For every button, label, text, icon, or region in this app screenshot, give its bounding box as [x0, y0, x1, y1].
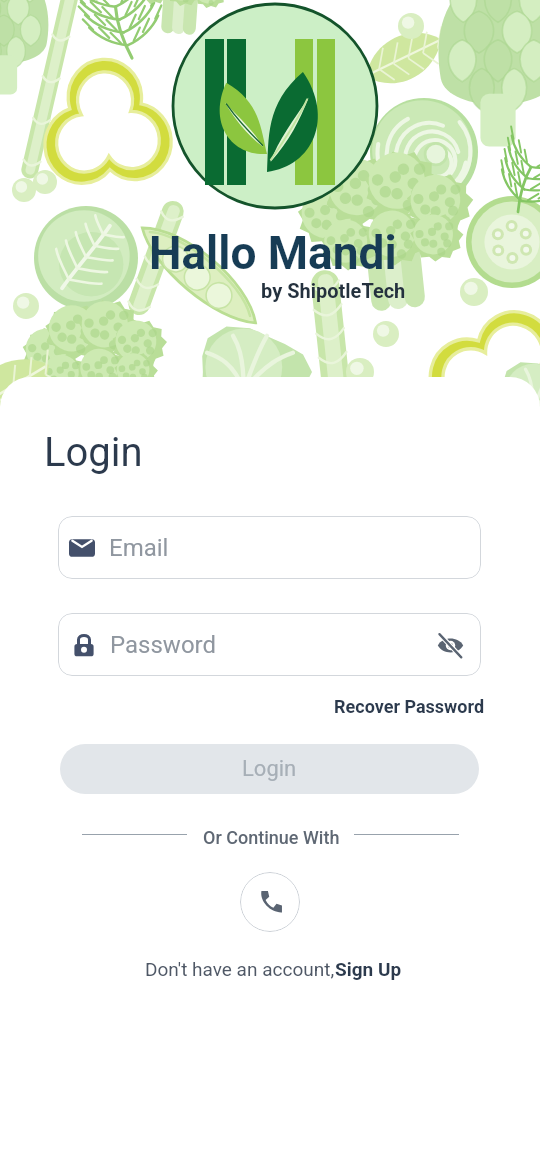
button[interactable]: Show password [431, 626, 469, 664]
staticText: by ShipotleTech [261, 279, 406, 302]
staticText: Or Continue With [203, 827, 340, 848]
button[interactable]: Password [58, 613, 481, 676]
button[interactable]: Email [58, 516, 481, 579]
staticText: Don't have an account, [145, 958, 335, 980]
staticText: Login [242, 756, 297, 782]
button[interactable]: Sign Up [335, 958, 402, 980]
staticText: Password [110, 631, 431, 659]
button[interactable]: Recover Password [334, 696, 485, 717]
button[interactable]: Login [60, 744, 479, 794]
staticText: Email [109, 534, 169, 562]
button[interactable]: Continue with phone [240, 872, 300, 932]
staticText: Hallo Mandi [149, 226, 397, 280]
staticText: Login [44, 429, 143, 476]
